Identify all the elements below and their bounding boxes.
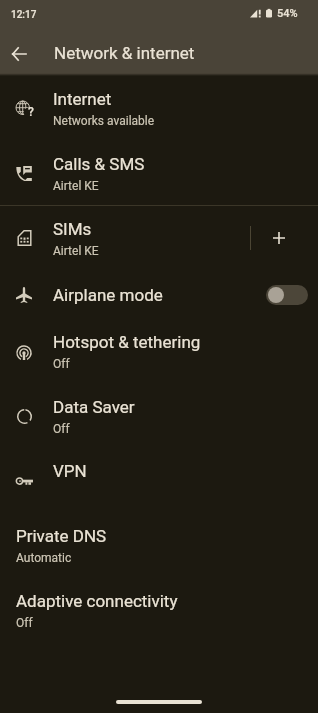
staticText: Adaptive connectivity [16, 591, 178, 611]
button[interactable]: Airplane mode [0, 270, 318, 319]
staticText: Off [16, 616, 33, 630]
staticText: SIMs [53, 219, 92, 239]
button[interactable]: Back [2, 37, 35, 70]
button[interactable]: Calls & SMS [0, 141, 318, 205]
staticText: Calls & SMS [53, 154, 145, 174]
button[interactable]: Data Saver [0, 384, 318, 448]
staticText: Off [53, 422, 70, 436]
staticText: Airtel KE [53, 244, 99, 258]
staticText: 12:17 [11, 9, 37, 21]
staticText: Network & internet [54, 43, 195, 63]
staticText: Networks available [53, 114, 155, 128]
button[interactable]: ? [0, 76, 318, 141]
staticText: Automatic [16, 551, 72, 565]
staticText: Airplane mode [53, 285, 163, 305]
button[interactable]: Private DNS [0, 513, 318, 578]
staticText: ? [28, 105, 34, 119]
staticText: Private DNS [16, 526, 107, 546]
staticText: Data Saver [53, 397, 135, 417]
button[interactable]: Hotspot & tethering [0, 319, 318, 384]
staticText: Hotspot & tethering [53, 332, 201, 352]
button[interactable]: Adaptive connectivity [0, 578, 318, 643]
button[interactable]: VPN [0, 448, 318, 513]
staticText: Internet [53, 89, 112, 109]
staticText: 54% [277, 7, 298, 20]
staticText: VPN [53, 461, 87, 481]
staticText: Airtel KE [53, 179, 99, 193]
staticText: Off [53, 357, 70, 371]
button[interactable]: SIMs [0, 206, 250, 270]
button[interactable]: Add SIM [251, 210, 307, 266]
